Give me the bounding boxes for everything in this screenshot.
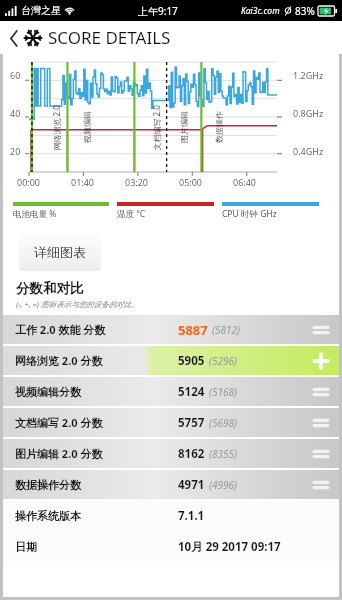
button[interactable]: 图片编辑 2.0 分数 xyxy=(3,439,339,468)
staticText: 日期 xyxy=(15,540,37,554)
button[interactable]: 网络浏览 2.0 分数 xyxy=(3,346,339,375)
staticText: 8162 xyxy=(178,446,205,462)
button[interactable]: 视频编辑分数 xyxy=(3,377,339,406)
staticText: 视频编辑分数 xyxy=(15,385,81,399)
staticText: CPU 时钟 GHz xyxy=(222,208,277,220)
staticText: (5812) xyxy=(212,323,240,337)
staticText: (5698) xyxy=(209,416,237,430)
button[interactable]: Back xyxy=(5,24,23,52)
staticText: (8355) xyxy=(209,447,237,461)
staticText: 5905 xyxy=(178,353,205,369)
staticText: 网络浏览 2.0 分数 xyxy=(15,353,103,368)
staticText: 60 xyxy=(10,69,21,81)
staticText: 0.8GHz xyxy=(293,107,324,119)
staticText: 40 xyxy=(10,107,21,119)
staticText: 台灣之星 xyxy=(21,4,61,17)
staticText: 7.1.1 xyxy=(178,508,205,524)
staticText: 05:00 xyxy=(179,176,203,188)
staticText: 操作系统版本 xyxy=(15,509,81,523)
staticText: 数据操作分数 xyxy=(15,478,81,492)
staticText: (5296) xyxy=(209,354,237,368)
staticText: 数据操作 xyxy=(214,111,224,143)
staticText: 00:00 xyxy=(17,176,41,188)
button[interactable]: 数据操作分数 xyxy=(3,470,339,499)
staticText: 文档编写 2.0 分数 xyxy=(15,415,103,430)
staticText: SCORE DETAILS xyxy=(48,26,171,49)
button[interactable]: 工作 2.0 效能 分数 xyxy=(3,315,339,344)
staticText: 06:40 xyxy=(233,176,257,188)
staticText: 网络浏览 2.0 xyxy=(50,104,61,150)
button[interactable]: 文档编写 2.0 分数 xyxy=(3,408,339,437)
staticText: 图片编辑 xyxy=(179,111,189,143)
button[interactable]: 操作系统版本 xyxy=(3,501,339,530)
staticText: 5124 xyxy=(178,384,205,400)
staticText: 分数和对比 xyxy=(16,280,84,297)
staticText: 0.4GHz xyxy=(293,145,324,157)
staticText: 03:20 xyxy=(125,176,149,188)
staticText: 文档编写 2.0 xyxy=(150,104,161,150)
staticText: 视频编辑 xyxy=(82,111,92,143)
staticText: (4996) xyxy=(209,478,237,492)
staticText: 温度 °C xyxy=(117,208,146,220)
staticText: 图片编辑 2.0 分数 xyxy=(15,446,103,461)
staticText: 4971 xyxy=(178,477,205,493)
button[interactable]: 日期 xyxy=(3,532,339,561)
staticText: (5168) xyxy=(209,385,237,399)
staticText: 10月 29 2017 09:17 xyxy=(178,539,281,555)
staticText: 5757 xyxy=(178,415,205,431)
staticText: 工作 2.0 效能 分数 xyxy=(15,322,106,337)
staticText: (-, +, =) 图标表示与您的设备的对比。 xyxy=(16,299,139,309)
button[interactable]: 详细图表 xyxy=(19,232,101,271)
staticText: 详细图表 xyxy=(34,244,86,260)
staticText: 1.2GHz xyxy=(293,69,324,81)
staticText: 5887 xyxy=(178,321,208,339)
staticText: Kai3c.com xyxy=(241,5,280,17)
staticText: 01:40 xyxy=(71,176,95,188)
staticText: 83% xyxy=(295,4,315,18)
staticText: 20 xyxy=(10,145,21,157)
staticText: 上午9:17 xyxy=(138,4,178,18)
staticText: 电池电量 % xyxy=(13,208,57,220)
